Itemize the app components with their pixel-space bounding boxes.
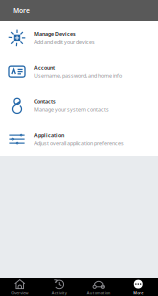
staticText: Add and edit your devices	[34, 38, 95, 45]
button[interactable]: Automation	[79, 278, 118, 296]
button[interactable]: Manage Devices	[0, 21, 158, 55]
staticText: More	[133, 290, 143, 295]
staticText: More	[13, 6, 30, 15]
button[interactable]: Contacts	[0, 88, 158, 122]
staticText: Contacts	[34, 98, 56, 105]
button[interactable]: Application	[0, 122, 158, 156]
staticText: Manage your system contacts	[34, 106, 109, 113]
button[interactable]: Activity	[39, 278, 79, 296]
staticText: Overview	[11, 290, 28, 295]
button[interactable]: Account	[0, 55, 158, 89]
staticText: Username, password, and home info	[34, 72, 122, 79]
button[interactable]: Overview	[0, 278, 39, 296]
staticText: Automation	[87, 290, 111, 295]
staticText: Application	[34, 131, 64, 139]
staticText: Activity	[52, 290, 67, 295]
staticText: Adjust overall application preferences	[34, 140, 124, 147]
button[interactable]: More	[118, 278, 158, 296]
staticText: Account	[34, 64, 55, 71]
staticText: Manage Devices	[34, 30, 76, 37]
